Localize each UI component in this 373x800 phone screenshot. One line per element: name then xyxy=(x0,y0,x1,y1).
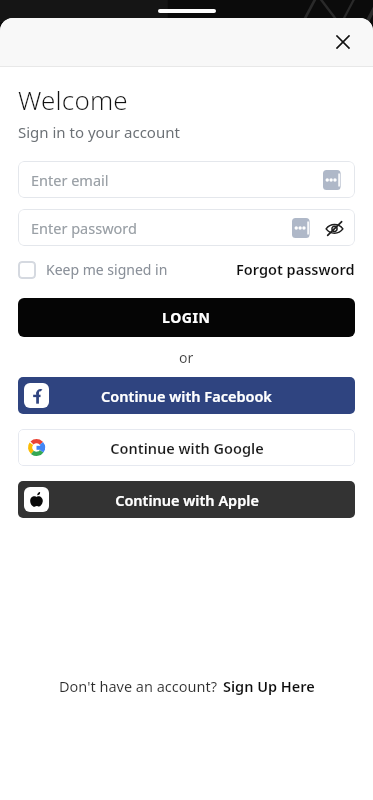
button[interactable]: Close xyxy=(323,22,363,62)
staticText: or xyxy=(179,348,194,367)
button[interactable]: Enter email xyxy=(18,161,355,198)
staticText: Forgot password xyxy=(236,259,355,279)
button[interactable]: Continue with Facebook xyxy=(18,377,355,414)
staticText: Don't have an account? xyxy=(59,676,217,696)
staticText: Continue with Facebook xyxy=(101,386,272,406)
staticText: LOGIN xyxy=(162,308,211,327)
button[interactable]: Keep me signed in xyxy=(18,258,168,281)
staticText: Enter password xyxy=(31,218,137,238)
button[interactable]: Forgot password xyxy=(236,257,355,281)
staticText: Continue with Apple xyxy=(115,490,259,510)
staticText: Sign Up Here xyxy=(223,676,315,696)
staticText: Continue with Google xyxy=(110,438,264,458)
button[interactable]: Sign Up Here xyxy=(223,676,315,696)
staticText: Keep me signed in xyxy=(46,260,168,279)
staticText: Sign in to your account xyxy=(18,122,180,142)
button[interactable]: Show password xyxy=(323,217,345,239)
button[interactable]: LOGIN xyxy=(18,298,355,337)
staticText: Enter email xyxy=(31,170,109,190)
staticText: Welcome xyxy=(18,82,128,117)
button[interactable]: Enter password xyxy=(18,209,355,246)
button[interactable]: Continue with Apple xyxy=(18,481,355,518)
button[interactable]: Continue with Google xyxy=(18,429,355,466)
